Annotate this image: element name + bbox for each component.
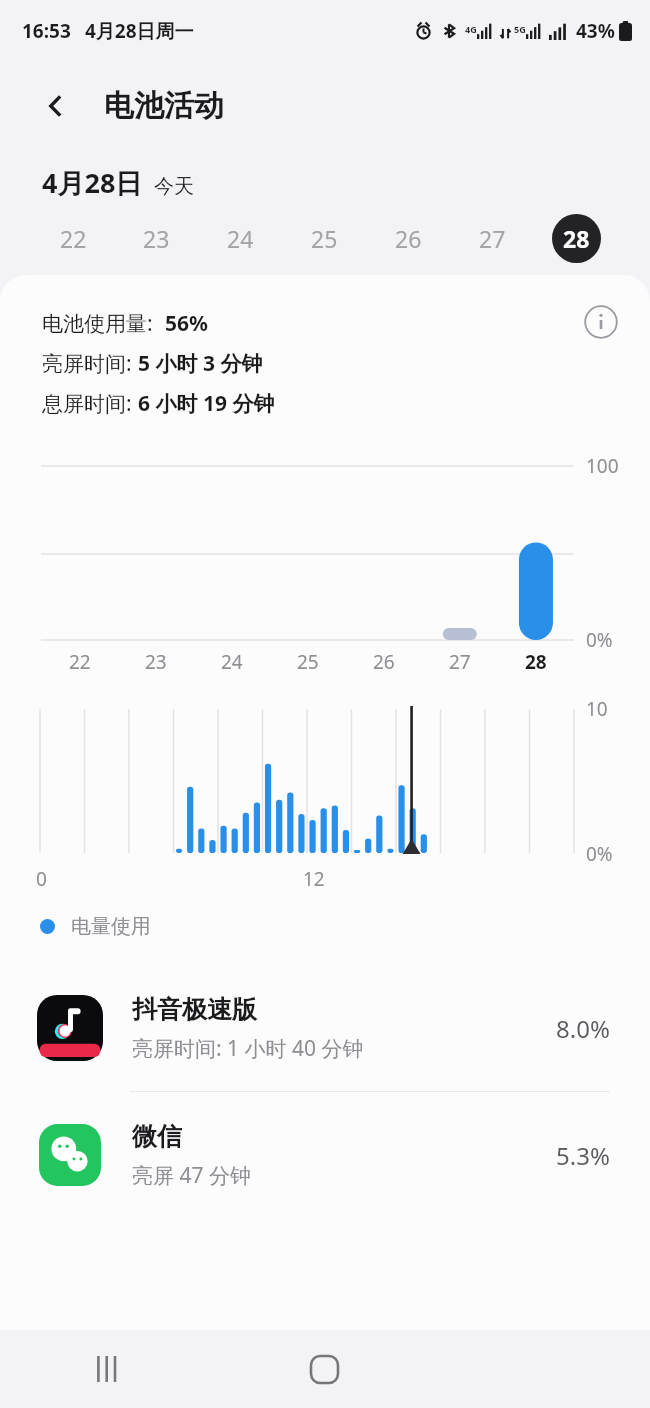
staticText: 5G [514, 23, 526, 35]
button[interactable]: 23 [115, 209, 198, 267]
staticText: 息屏时间: [42, 389, 132, 418]
staticText: 亮屏时间: [42, 349, 132, 378]
staticText: 100 [586, 453, 619, 479]
staticText: 23 [145, 649, 167, 675]
staticText: 电池活动 [104, 87, 224, 125]
staticText: 亮屏 47 分钟 [132, 1161, 251, 1190]
staticText: 0 [36, 866, 47, 892]
button[interactable]: 22 [32, 209, 115, 267]
staticText: 24 [227, 223, 254, 254]
button[interactable]: 26 [366, 209, 450, 267]
staticText: 抖音极速版 [132, 994, 257, 1025]
staticText: 12 [303, 866, 325, 892]
staticText: 28 [525, 649, 547, 675]
staticText: 8.0% [556, 1012, 610, 1045]
staticText: 27 [449, 649, 471, 675]
staticText: 24 [221, 649, 243, 675]
staticText: 亮屏时间: 1 小时 40 分钟 [132, 1034, 364, 1063]
staticText: 0% [586, 841, 613, 867]
button[interactable]: Info [582, 303, 620, 341]
staticText: 25 [297, 649, 319, 675]
staticText: 25 [311, 223, 338, 254]
staticText: 4G [465, 23, 477, 35]
button[interactable]: 27 [450, 209, 534, 267]
staticText: 27 [479, 223, 506, 254]
button[interactable]: Recents [0, 1330, 216, 1408]
staticText: 43% [576, 18, 615, 44]
staticText: 4月28日 [42, 164, 143, 201]
staticText: 23 [143, 223, 170, 254]
button[interactable]: Back [32, 82, 80, 130]
staticText: 26 [373, 649, 395, 675]
staticText: 56% [165, 309, 208, 338]
staticText: 5 小时 3 分钟 [138, 349, 263, 378]
staticText: 4月28日周一 [85, 18, 194, 44]
button[interactable]: 25 [282, 209, 366, 267]
staticText: 今天 [154, 174, 194, 199]
staticText: 16:53 [22, 18, 71, 44]
staticText: 10 [586, 696, 608, 722]
staticText: 26 [395, 223, 422, 254]
button[interactable]: Home [216, 1330, 433, 1408]
staticText: 电池使用量: [42, 309, 153, 338]
staticText: 22 [60, 223, 87, 254]
staticText: 22 [69, 649, 91, 675]
staticText: 28 [563, 223, 590, 254]
staticText: 0% [586, 627, 613, 653]
button[interactable]: 抖音极速版 [0, 965, 650, 1091]
staticText: 微信 [132, 1121, 182, 1152]
button[interactable]: 微信 [0, 1092, 650, 1218]
staticText: 5.3% [556, 1139, 610, 1172]
button[interactable]: 24 [198, 209, 282, 267]
staticText: 6 小时 19 分钟 [138, 389, 275, 418]
staticText: 电量使用 [71, 914, 151, 939]
button[interactable]: 28 [534, 209, 618, 267]
